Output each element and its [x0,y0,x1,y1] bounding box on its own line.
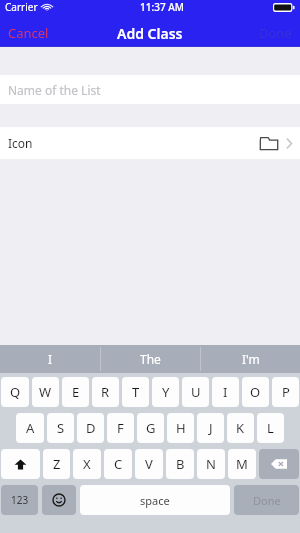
staticText: G [146,419,156,437]
staticText: O [250,383,261,401]
button[interactable]: E [62,377,89,407]
staticText: K [236,419,245,437]
staticText: Add Class [117,24,183,43]
staticText: P [282,383,290,401]
staticText: Icon [8,135,33,151]
staticText: N [206,455,216,473]
button[interactable]: R [92,377,119,407]
button[interactable]: I'm [201,345,300,373]
button[interactable]: Backspace [259,449,299,479]
button[interactable]: O [242,377,269,407]
staticText: space [140,493,170,508]
button[interactable]: Emoji keyboard [42,485,76,515]
staticText: H [176,419,186,437]
button[interactable]: H [167,413,194,443]
button[interactable]: N [197,449,225,479]
staticText: V [145,455,153,473]
staticText: The [140,351,161,367]
button[interactable]: D [77,413,104,443]
staticText: J [209,419,213,437]
staticText: L [267,419,274,437]
button[interactable]: 123 [1,485,38,515]
button[interactable]: J [197,413,224,443]
button[interactable]: K [227,413,254,443]
staticText: Done [253,493,281,508]
staticText: 11:37 AM [140,0,184,14]
button[interactable]: C [104,449,132,479]
staticText: Carrier [5,0,38,14]
staticText: Z [53,455,61,473]
staticText: Name of the List [8,82,101,98]
button[interactable]: space [80,485,230,515]
staticText: A [26,419,35,437]
button[interactable]: V [135,449,163,479]
staticText: S [57,419,65,437]
button[interactable]: The [101,345,200,373]
button[interactable]: X [73,449,101,479]
staticText: I [223,383,228,401]
staticText: 123 [11,493,29,507]
staticText: E [72,383,80,401]
staticText: Cancel [8,24,49,42]
button[interactable]: Shift [1,449,40,479]
staticText: B [176,455,185,473]
staticText: I [48,351,53,367]
button[interactable]: U [182,377,209,407]
staticText: X [83,455,91,473]
staticText: I'm [242,351,260,367]
button[interactable]: S [47,413,74,443]
staticText: Y [162,383,170,401]
staticText: U [191,383,201,401]
staticText: F [117,419,124,437]
button[interactable]: I [212,377,239,407]
staticText: M [236,455,248,473]
button[interactable]: A [16,413,44,443]
button[interactable]: P [272,377,299,407]
button[interactable]: W [32,377,59,407]
button[interactable]: Z [43,449,70,479]
button[interactable]: Name of the List [0,75,300,104]
button[interactable]: B [166,449,194,479]
button[interactable]: T [122,377,149,407]
button[interactable]: M [228,449,256,479]
button[interactable]: F [107,413,134,443]
button[interactable]: L [257,413,284,443]
button[interactable]: Q [1,377,29,407]
staticText: W [39,383,52,401]
button[interactable]: Icon [0,127,300,159]
staticText: Done [259,24,292,42]
button[interactable]: I [0,345,100,373]
button[interactable]: Done [234,485,299,515]
staticText: R [101,383,110,401]
button[interactable]: Cancel [0,21,57,45]
button[interactable]: G [137,413,164,443]
staticText: D [86,419,96,437]
button[interactable]: Done [251,21,300,45]
staticText: C [114,455,123,473]
staticText: T [132,383,140,401]
button[interactable]: Y [152,377,179,407]
staticText: Q [10,383,21,401]
